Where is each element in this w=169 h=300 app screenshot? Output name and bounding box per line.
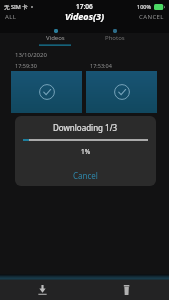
button[interactable]: ALL bbox=[0, 11, 27, 24]
staticText: 1% bbox=[81, 147, 91, 156]
button[interactable]: Photos bbox=[85, 27, 145, 46]
staticText: Photos bbox=[105, 34, 125, 42]
staticText: Downloading 1/3 bbox=[53, 122, 118, 133]
button[interactable]: CANCEL bbox=[129, 11, 169, 24]
staticText: 17:59:30 bbox=[15, 62, 37, 69]
button[interactable]: Delete bbox=[84, 280, 169, 300]
button[interactable]: Videos bbox=[25, 27, 85, 46]
staticText: Videos bbox=[46, 34, 65, 42]
staticText: 17:53:04 bbox=[90, 62, 112, 69]
staticText: CANCEL bbox=[139, 13, 164, 21]
staticText: Cancel bbox=[73, 170, 98, 181]
button[interactable] bbox=[86, 71, 157, 113]
button[interactable]: Cancel bbox=[15, 162, 156, 186]
staticText: 13/10/2020 bbox=[15, 51, 47, 59]
staticText: 17:06 bbox=[76, 2, 93, 11]
staticText: 无 SIM 卡 bbox=[4, 3, 28, 11]
staticText: 100% bbox=[137, 3, 152, 10]
button[interactable] bbox=[11, 71, 82, 113]
staticText: Videos(3) bbox=[65, 10, 104, 22]
button[interactable]: Download bbox=[0, 280, 84, 300]
staticText: ALL bbox=[5, 13, 17, 21]
